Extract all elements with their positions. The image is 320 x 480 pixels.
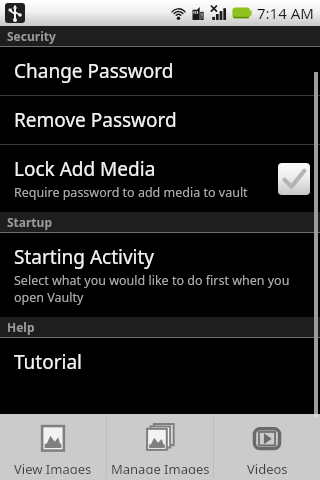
button[interactable]: Starting Activity: [0, 233, 320, 317]
button[interactable]: View Images: [0, 414, 106, 480]
staticText: Help: [7, 319, 35, 335]
staticText: 7:14 AM: [257, 3, 314, 23]
staticText: Require password to add media to vault: [14, 184, 248, 201]
button[interactable]: Manage Images: [107, 414, 213, 480]
staticText: Manage Images: [111, 460, 210, 474]
staticText: View Images: [14, 460, 92, 474]
button[interactable]: Videos: [214, 414, 320, 480]
staticText: Starting Activity: [14, 244, 155, 270]
staticText: Security: [7, 28, 56, 44]
staticText: Lock Add Media: [14, 156, 156, 182]
button[interactable]: Lock Add Media: [0, 145, 320, 212]
button[interactable]: Lock Add Media checkbox: [278, 163, 310, 195]
button[interactable]: Remove Password: [0, 96, 320, 144]
staticText: Tutorial: [14, 349, 83, 375]
staticText: Remove Password: [14, 107, 177, 133]
staticText: Change Password: [14, 58, 174, 84]
button[interactable]: Change Password: [0, 47, 320, 95]
staticText: Videos: [247, 460, 288, 474]
staticText: Startup: [7, 214, 52, 230]
staticText: Select what you would like to do first w…: [14, 272, 310, 306]
button[interactable]: Tutorial: [0, 338, 320, 386]
